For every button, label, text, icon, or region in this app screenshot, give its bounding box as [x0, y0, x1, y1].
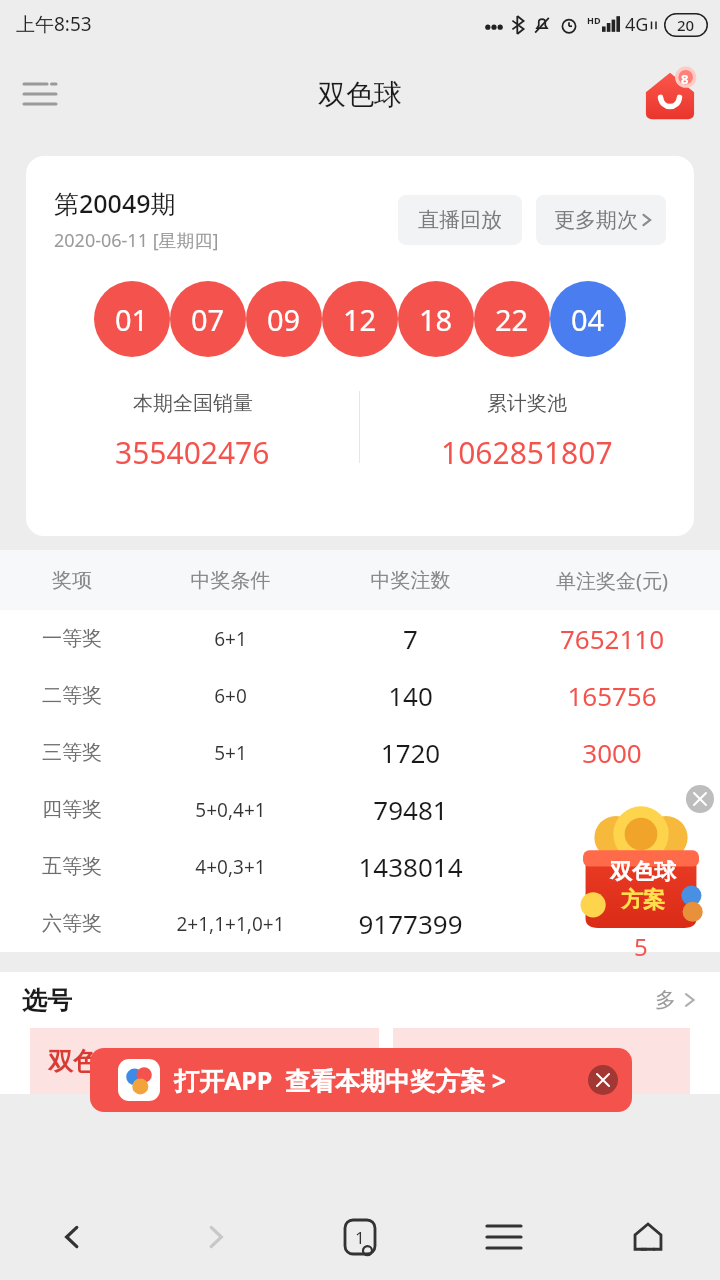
staticText: 一等奖	[0, 626, 144, 651]
button[interactable]: 三等奖	[0, 724, 720, 781]
staticText: 2+1,1+1,0+1	[144, 911, 317, 937]
staticText: 20	[677, 15, 695, 35]
staticText: 09	[267, 300, 301, 339]
button[interactable]: 一等奖	[0, 610, 720, 667]
staticText: 6+0	[144, 683, 317, 709]
staticText: 12	[343, 300, 377, 339]
staticText: 三等奖	[0, 740, 144, 765]
button[interactable]: 二等奖	[0, 667, 720, 724]
staticText: 六等奖	[0, 911, 144, 936]
staticText: 7652110	[504, 621, 720, 656]
staticText: 4G	[625, 12, 649, 37]
staticText: 方案	[621, 886, 665, 914]
button[interactable]: Close ad	[588, 1065, 618, 1095]
staticText: 3000	[504, 735, 720, 770]
staticText: 多	[655, 987, 676, 1013]
button[interactable]: 五等奖	[0, 838, 720, 895]
staticText: 打开APP 查看本期中奖方案 >	[174, 1063, 507, 1097]
button[interactable]: 直播回放	[398, 195, 522, 245]
staticText: 双色球	[610, 858, 676, 886]
staticText: 07	[191, 300, 225, 339]
staticText: 单注奖金(元)	[504, 567, 720, 594]
staticText: 四等奖	[0, 797, 144, 822]
staticText: 2020050期	[260, 1048, 361, 1075]
button[interactable]: Close promotion	[686, 785, 714, 813]
button[interactable]: Home	[576, 1194, 720, 1280]
staticText: 累计奖池	[487, 391, 567, 416]
staticText: 1720	[317, 735, 504, 770]
staticText: 5+1	[144, 740, 317, 766]
staticText: 本期全国销量	[133, 391, 253, 416]
staticText: 直播回放	[418, 207, 502, 233]
staticText: 选号	[22, 985, 72, 1016]
staticText: 04	[571, 300, 605, 339]
button[interactable]: 双色球	[30, 1028, 379, 1094]
button[interactable]: 四等奖	[0, 781, 720, 838]
staticText: 上午8:53	[16, 11, 92, 37]
button[interactable]: Back	[0, 1194, 144, 1280]
staticText: 5	[634, 930, 648, 962]
button[interactable]: Home	[638, 62, 702, 126]
staticText: 6+1	[144, 626, 317, 652]
staticText: 140	[317, 678, 504, 713]
staticText: 双色球	[48, 1046, 123, 1077]
staticText: 165756	[504, 678, 720, 713]
staticText: 五等奖	[0, 854, 144, 879]
staticText: 22	[495, 300, 529, 339]
staticText: 二等奖	[0, 683, 144, 708]
staticText: 79481	[317, 792, 504, 827]
staticText: 18	[419, 300, 453, 339]
staticText: 01	[115, 300, 149, 339]
staticText: 更多期次	[554, 207, 638, 233]
staticText: HD	[587, 14, 601, 26]
staticText: 2020-06-11 [星期四]	[54, 228, 219, 253]
staticText: 355402476	[115, 432, 270, 473]
staticText: 中奖条件	[144, 568, 317, 593]
staticText: 第20049期	[54, 186, 176, 220]
staticText: 1062851807	[441, 432, 613, 473]
staticText: 双色球	[411, 1046, 486, 1077]
staticText: 8	[681, 70, 689, 88]
button[interactable]: 打开APP 查看本期中奖方案 >	[90, 1048, 632, 1112]
staticText: 1438014	[317, 849, 504, 884]
button[interactable]: Forward	[144, 1194, 288, 1280]
staticText: 奖项	[0, 568, 144, 593]
button[interactable]: 六等奖	[0, 895, 720, 952]
staticText: 5+0,4+1	[144, 797, 317, 823]
staticText: 双色球	[318, 77, 402, 112]
button[interactable]: 更多期次	[536, 195, 666, 245]
button[interactable]: 双色球	[393, 1028, 690, 1094]
staticText: 4+0,3+1	[144, 854, 317, 880]
button[interactable]: Menu	[12, 66, 68, 122]
button[interactable]: 多	[655, 987, 698, 1013]
staticText: 1	[355, 1226, 365, 1249]
button[interactable]: Tabs	[288, 1194, 432, 1280]
staticText: 7	[317, 621, 504, 656]
button[interactable]: Menu	[432, 1194, 576, 1280]
staticText: 9177399	[317, 906, 504, 941]
staticText: 中奖注数	[317, 568, 504, 593]
